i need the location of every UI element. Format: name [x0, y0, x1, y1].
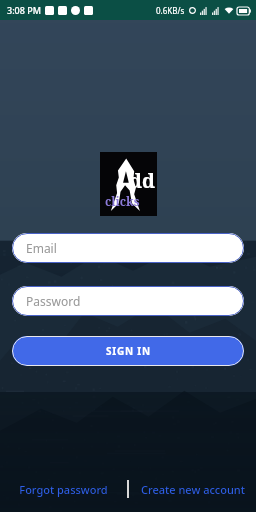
staticText: 3:08 PM [7, 4, 41, 16]
staticText: Password [26, 293, 81, 309]
button[interactable]: Password [12, 286, 244, 316]
button[interactable]: Forgot password [0, 482, 127, 497]
button[interactable]: Email [12, 233, 244, 263]
staticText: SIGN IN [106, 344, 151, 358]
staticText: Email [26, 240, 57, 256]
staticText: clicks [105, 193, 140, 209]
staticText: dd [129, 167, 155, 194]
staticText: 0.6KB/s [156, 5, 185, 16]
staticText: Create new account [141, 482, 245, 497]
staticText: Forgot password [19, 482, 108, 497]
button[interactable]: SIGN IN [12, 336, 244, 366]
button[interactable]: Create new account [129, 482, 256, 497]
